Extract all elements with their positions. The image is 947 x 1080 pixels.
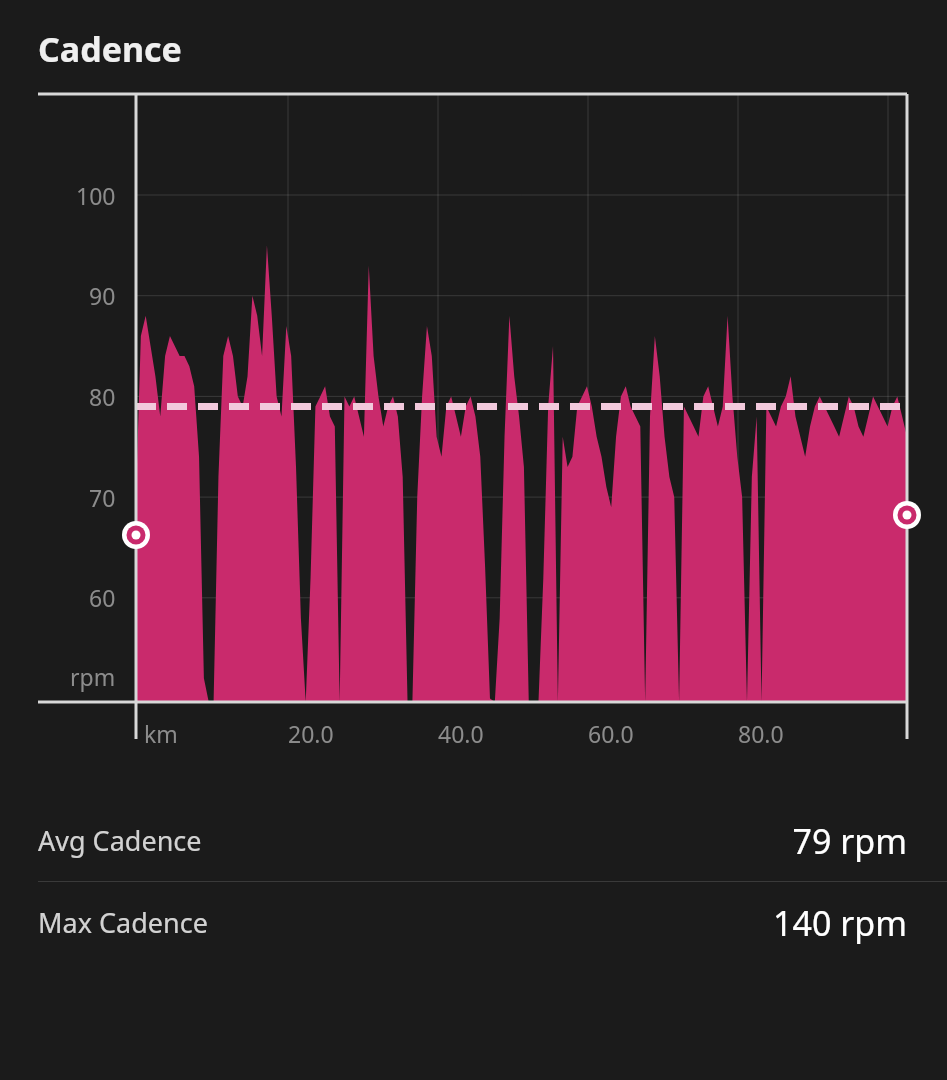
staticText: Cadence [38, 26, 182, 72]
staticText: 140 rpm [773, 900, 907, 946]
staticText: Max Cadence [38, 904, 208, 941]
staticText: 79 rpm [792, 818, 907, 864]
staticText: Avg Cadence [38, 822, 202, 859]
button[interactable]: Max Cadence [0, 882, 947, 963]
button[interactable]: Avg Cadence [0, 800, 947, 881]
button[interactable] [0, 90, 947, 750]
